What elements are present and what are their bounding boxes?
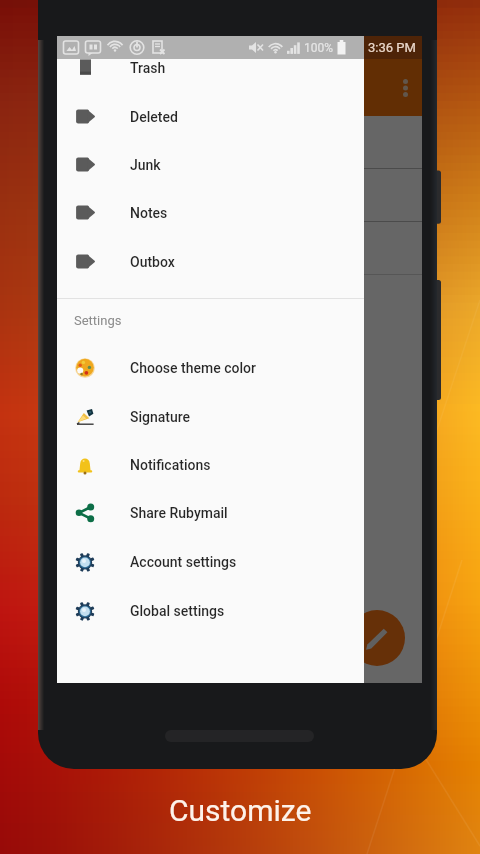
button[interactable]: Choose theme color — [57, 344, 364, 392]
button[interactable]: Junk — [57, 141, 364, 189]
button[interactable]: Notifications — [57, 441, 364, 489]
staticText: Settings — [74, 313, 122, 328]
staticText: Global settings — [130, 603, 225, 619]
staticText: Customize — [169, 793, 312, 828]
staticText: Notifications — [130, 457, 211, 473]
staticText: Signature — [130, 409, 191, 425]
staticText: Trash — [130, 60, 166, 76]
staticText: 3:36 PM — [368, 40, 416, 55]
button[interactable]: Trash — [57, 44, 364, 92]
staticText: Outbox — [130, 254, 175, 270]
button[interactable]: Account settings — [57, 538, 364, 586]
staticText: Share Rubymail — [130, 505, 228, 521]
staticText: Choose theme color — [130, 360, 256, 376]
button[interactable]: Global settings — [57, 587, 364, 635]
button[interactable]: Notes — [57, 189, 364, 237]
staticText: 100% — [304, 41, 334, 55]
button[interactable]: Compose — [349, 610, 405, 666]
button[interactable]: Deleted — [57, 93, 364, 141]
staticText: Deleted — [130, 109, 178, 125]
button[interactable]: Signature — [57, 393, 364, 441]
button[interactable]: Outbox — [57, 238, 364, 286]
staticText: Account settings — [130, 554, 237, 570]
staticText: Notes — [130, 205, 168, 221]
staticText: Junk — [130, 157, 161, 173]
button[interactable]: More options — [388, 59, 422, 116]
button[interactable]: Share Rubymail — [57, 489, 364, 537]
